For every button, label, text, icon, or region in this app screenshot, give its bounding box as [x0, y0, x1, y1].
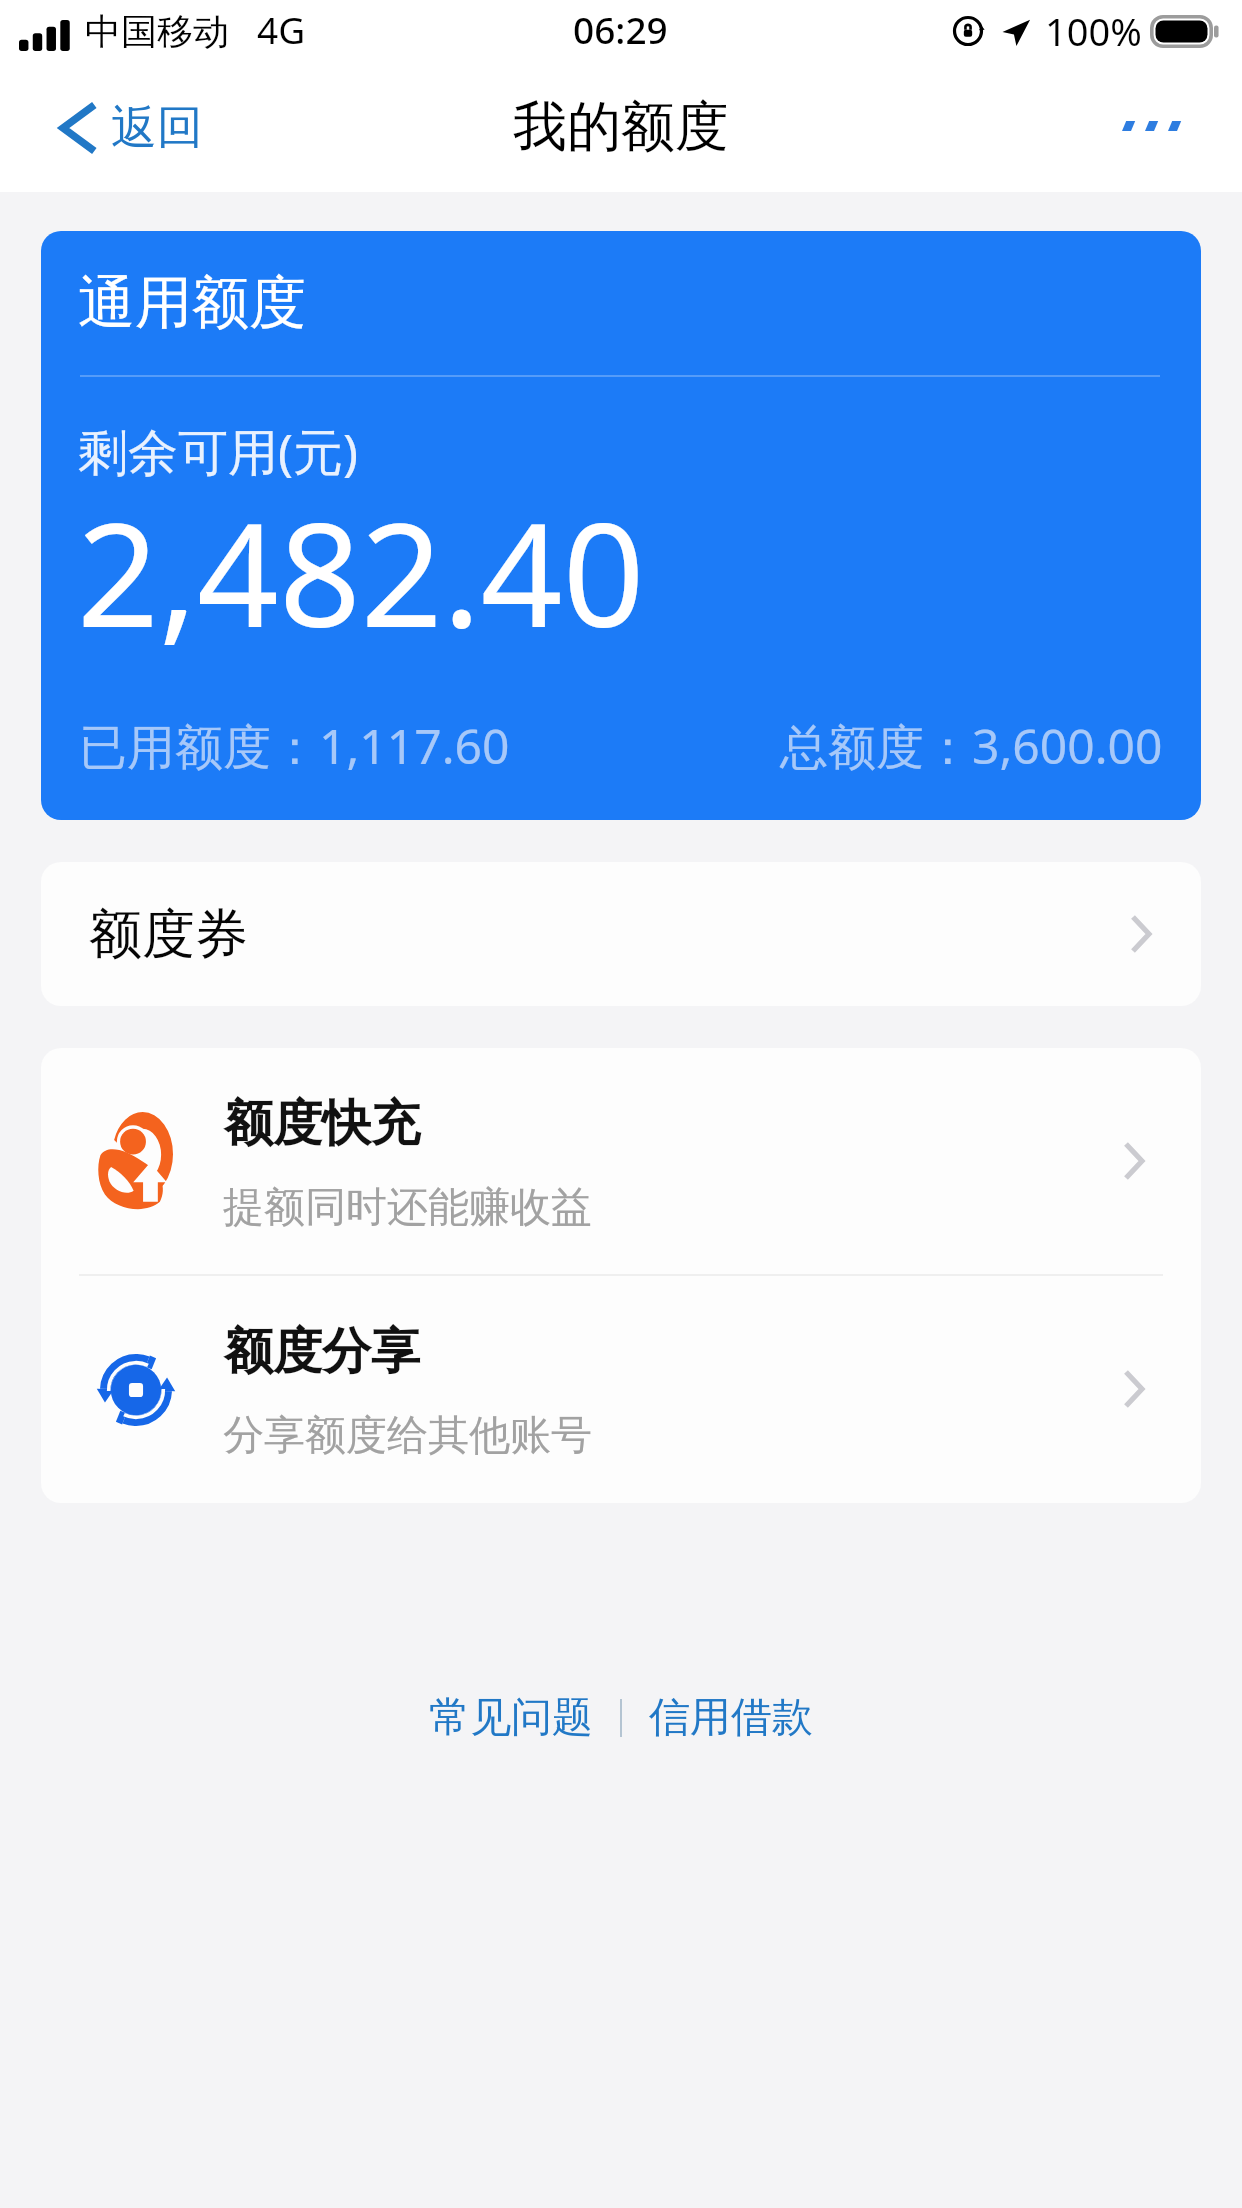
staticText: 2,482.40 [77, 474, 645, 669]
button[interactable]: More options [1092, 63, 1242, 189]
staticText: 常见问题 [429, 1692, 593, 1744]
button[interactable]: 额度快充 [41, 1048, 1201, 1274]
staticText: 返回 [111, 99, 203, 157]
button[interactable]: 额度分享 [41, 1276, 1201, 1502]
button[interactable]: 返回 [0, 68, 233, 188]
button[interactable]: 通用额度 [41, 231, 1201, 820]
staticText: 额度分享 [224, 1321, 420, 1383]
staticText: 剩余可用(元) [78, 417, 358, 485]
staticText: 总额度：3,600.00 [780, 713, 1163, 779]
staticText: 通用额度 [78, 267, 306, 339]
staticText: 分享额度给其他账号 [223, 1410, 592, 1462]
staticText: 06:29 [573, 4, 668, 54]
staticText: 信用借款 [649, 1692, 813, 1744]
staticText: 我的额度 [513, 93, 729, 161]
staticText: 4G [257, 4, 306, 54]
staticText: 提额同时还能赚收益 [223, 1182, 592, 1234]
staticText: 已用额度：1,117.60 [79, 713, 510, 779]
button[interactable]: 信用借款 [622, 1680, 840, 1756]
staticText: 额度券 [89, 901, 248, 968]
staticText: 100% [1045, 5, 1142, 57]
button[interactable]: 额度券 [41, 862, 1201, 1006]
staticText: 额度快充 [224, 1093, 420, 1155]
staticText: 中国移动 [85, 9, 229, 54]
button[interactable]: 常见问题 [402, 1680, 620, 1756]
